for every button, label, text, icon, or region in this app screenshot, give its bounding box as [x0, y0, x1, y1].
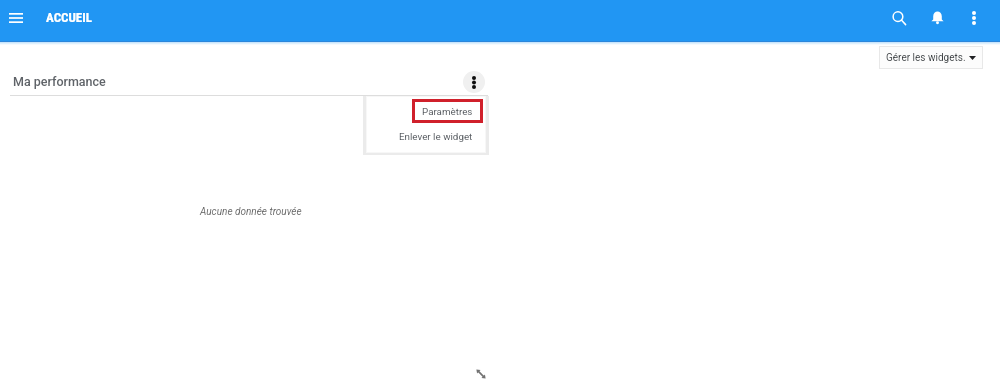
button[interactable]: Open navigation menu	[3, 5, 28, 30]
staticText: Gérer les widgets.	[886, 52, 966, 64]
button[interactable]: Search	[887, 6, 911, 30]
button[interactable]: More options	[962, 6, 986, 30]
button[interactable]: Enlever le widget	[366, 123, 473, 149]
button[interactable]: Notifications	[925, 5, 949, 29]
button[interactable]: Widget options	[463, 71, 485, 93]
staticText: Paramètres	[422, 106, 473, 117]
staticText: ACCUEIL	[46, 10, 92, 25]
staticText: Enlever le widget	[399, 131, 473, 142]
button[interactable]: Gérer les widgets.	[879, 46, 983, 69]
button[interactable]: Paramètres	[366, 100, 473, 123]
staticText: Aucune donnée trouvée	[200, 206, 302, 218]
staticText: Ma performance	[13, 74, 106, 89]
